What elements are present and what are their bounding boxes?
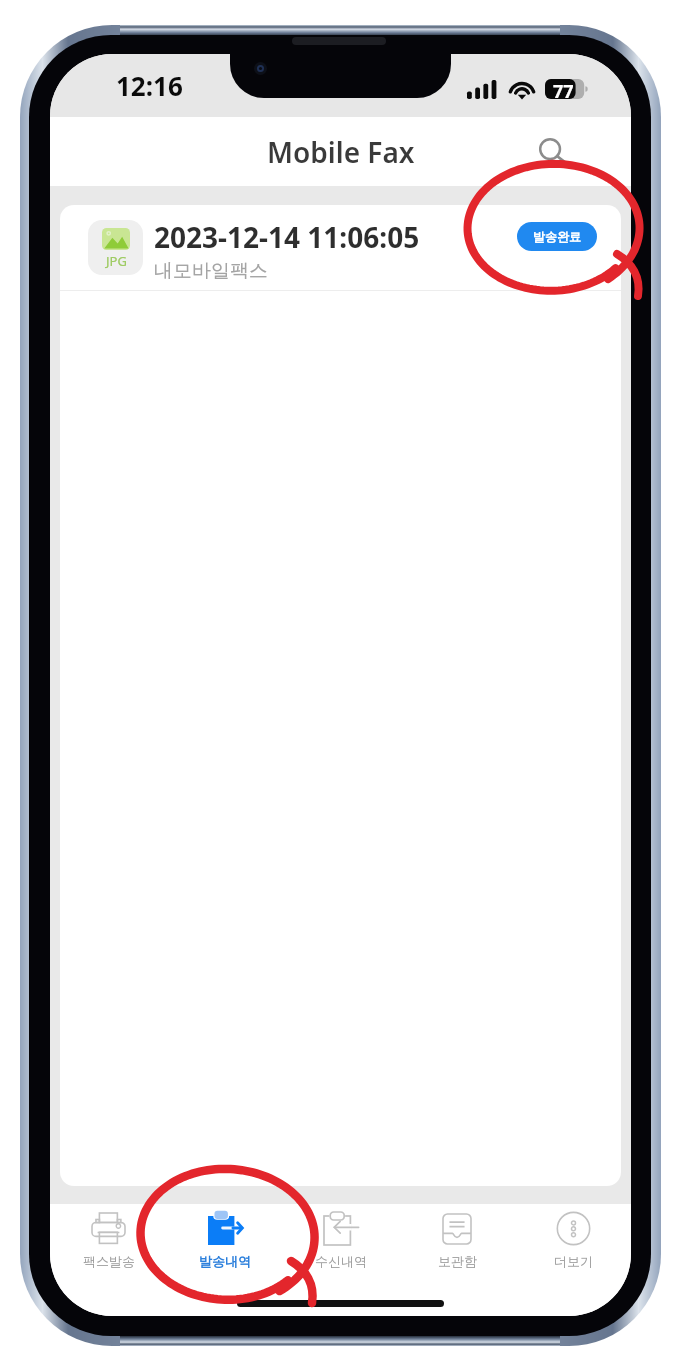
staticText: 77 [553, 79, 574, 99]
button[interactable]: 팩스발송 [50, 1213, 167, 1277]
staticText: 보관함 [438, 1253, 477, 1269]
button[interactable]: 보관함 [399, 1213, 515, 1277]
button[interactable]: 발송완료 [517, 222, 597, 251]
staticText: 발송완료 [533, 229, 581, 244]
staticText: 12:16 [116, 68, 183, 103]
button[interactable]: 발송내역 [167, 1213, 283, 1277]
staticText: 발송내역 [199, 1253, 251, 1269]
button[interactable]: Search [530, 130, 574, 174]
staticText: Mobile Fax [267, 133, 415, 171]
staticText: 2023-12-14 11:06:05 [154, 218, 420, 256]
button[interactable]: 수신내역 [283, 1213, 399, 1277]
button[interactable]: 더보기 [515, 1213, 631, 1277]
staticText: 내모바일팩스 [154, 259, 268, 283]
staticText: 더보기 [554, 1253, 593, 1269]
staticText: JPG [106, 252, 127, 270]
staticText: 팩스발송 [83, 1253, 135, 1269]
staticText: 수신내역 [315, 1253, 367, 1269]
button[interactable]: JPG [60, 205, 621, 290]
